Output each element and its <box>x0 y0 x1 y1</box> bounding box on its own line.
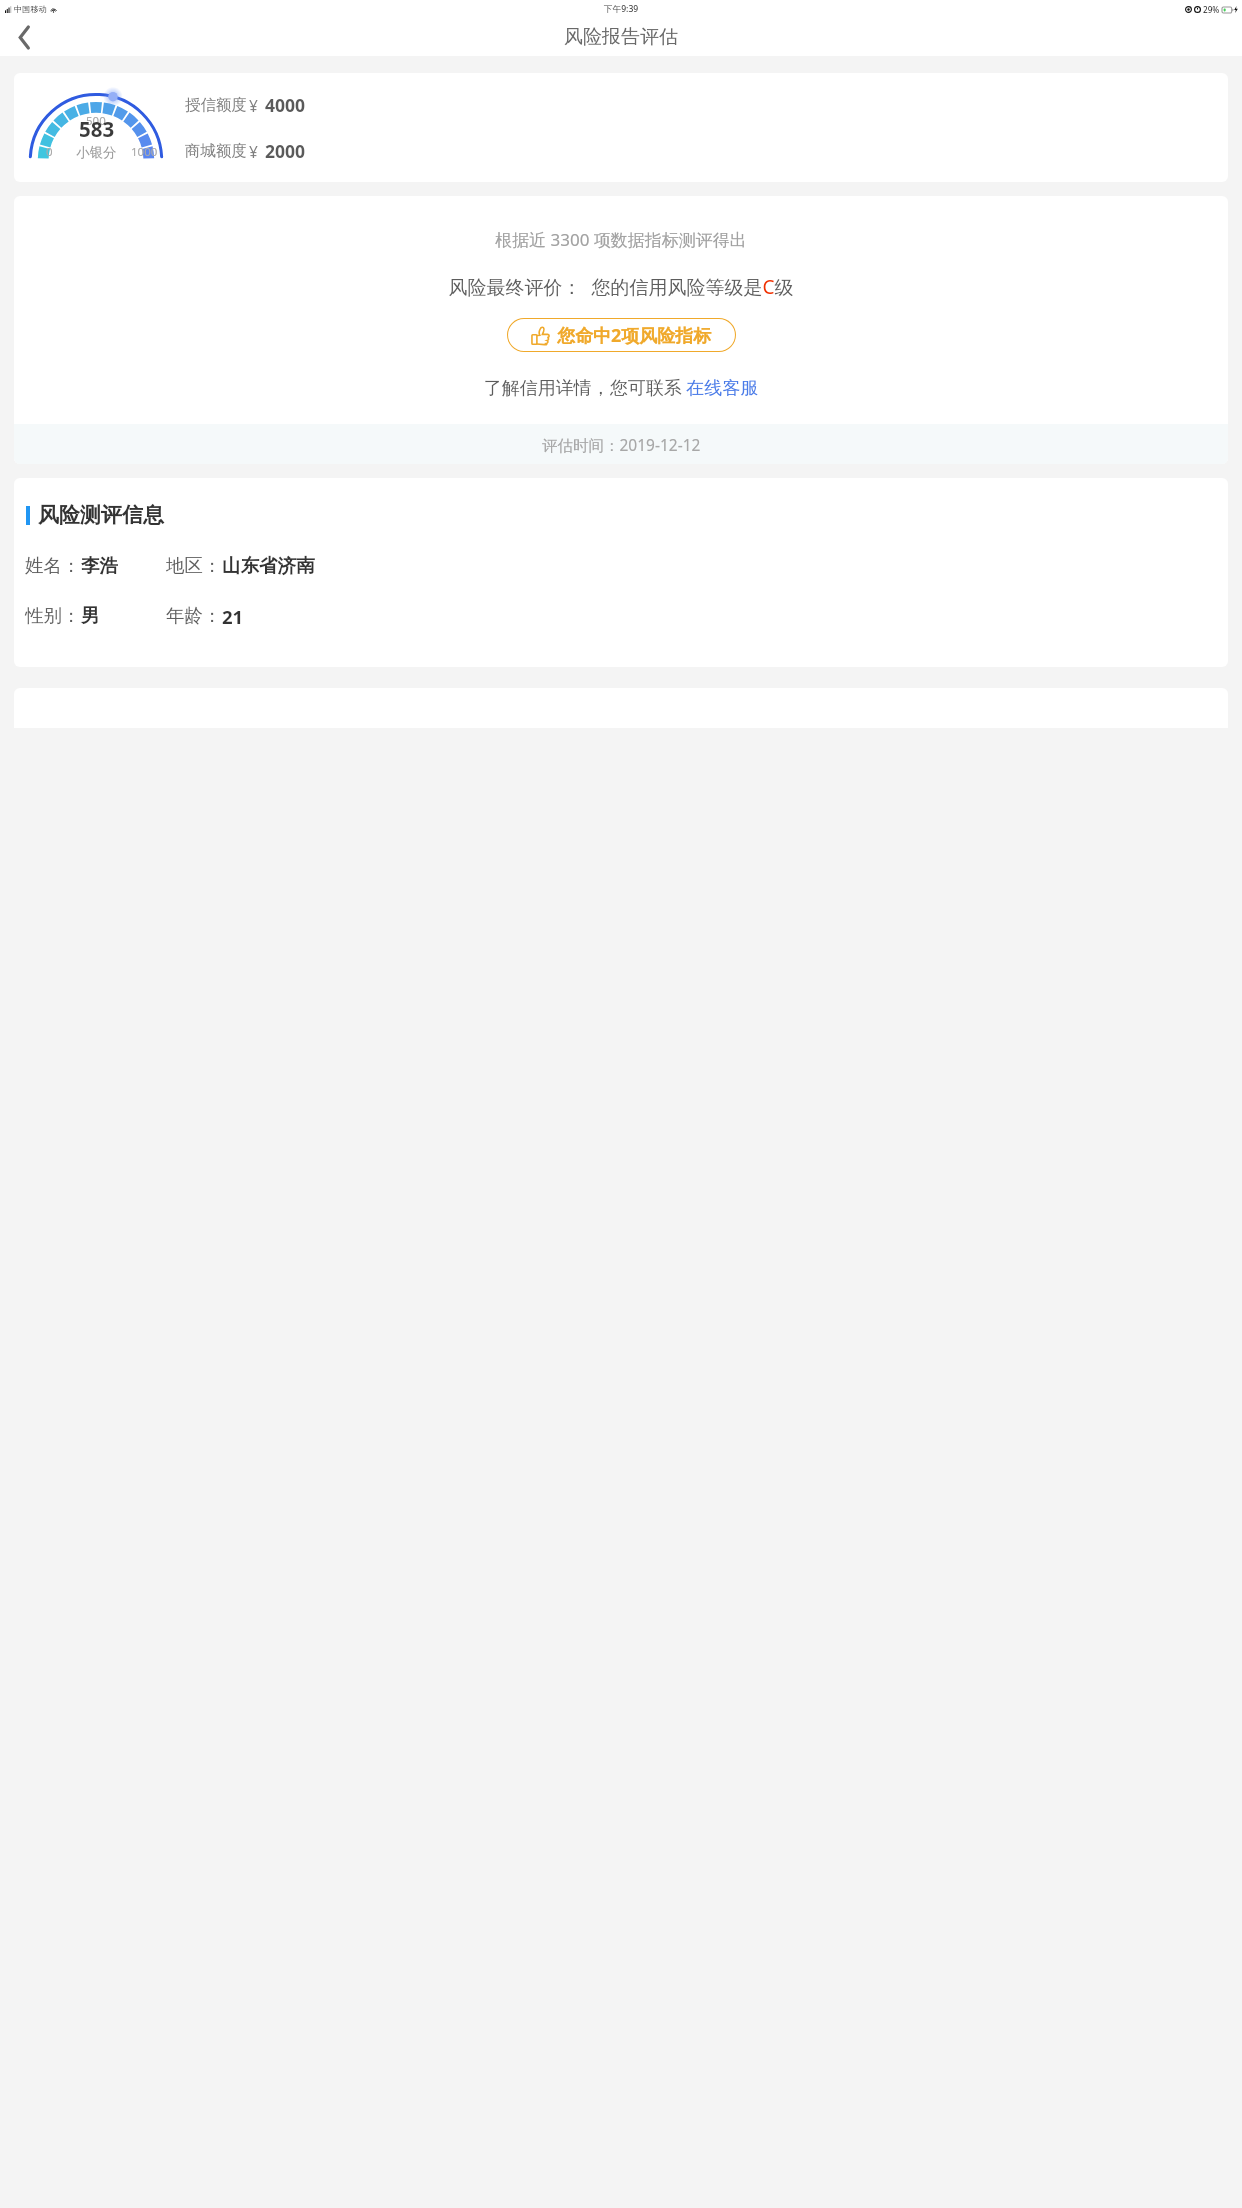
staticText: 商城额度 <box>185 141 247 161</box>
staticText: 下午9:39 <box>604 3 639 15</box>
staticText: 山东省济南 <box>222 554 315 577</box>
staticText: 风险报告评估 <box>564 25 678 49</box>
staticText: 地区： <box>166 554 222 577</box>
staticText: 了解信用详情，您可联系 在线客服 <box>14 375 1228 400</box>
staticText: ¥ <box>249 95 258 116</box>
staticText: 您命中2项风险指标 <box>557 323 712 348</box>
staticText: 评估时间：2019-12-12 <box>542 434 701 455</box>
button[interactable]: 您命中2项风险指标 <box>507 318 736 352</box>
staticText: 29% <box>1203 4 1220 15</box>
staticText: ¥ <box>249 141 258 162</box>
staticText: 李浩 <box>81 554 118 577</box>
staticText: 1000 <box>131 144 158 160</box>
staticText: 授信额度 <box>185 95 247 115</box>
staticText: 中国移动 <box>14 4 47 14</box>
staticText: 风险测评信息 <box>38 502 164 528</box>
button[interactable]: Back <box>10 22 40 52</box>
staticText: 2000 <box>265 139 306 163</box>
staticText: 4000 <box>265 93 306 117</box>
staticText: 0 <box>46 144 53 160</box>
staticText: 小银分 <box>76 144 117 161</box>
staticText: 583 <box>79 115 115 143</box>
staticText: 21 <box>222 604 244 629</box>
staticText: 500 <box>86 113 106 129</box>
staticText: 年龄： <box>166 604 222 627</box>
staticText: 男 <box>81 604 100 627</box>
staticText: 风险最终评价： 您的信用风险等级是C级 <box>14 274 1228 300</box>
staticText: 根据近 3300 项数据指标测评得出 <box>14 228 1228 251</box>
staticText: 性别： <box>25 604 81 627</box>
staticText: 姓名： <box>25 554 81 577</box>
